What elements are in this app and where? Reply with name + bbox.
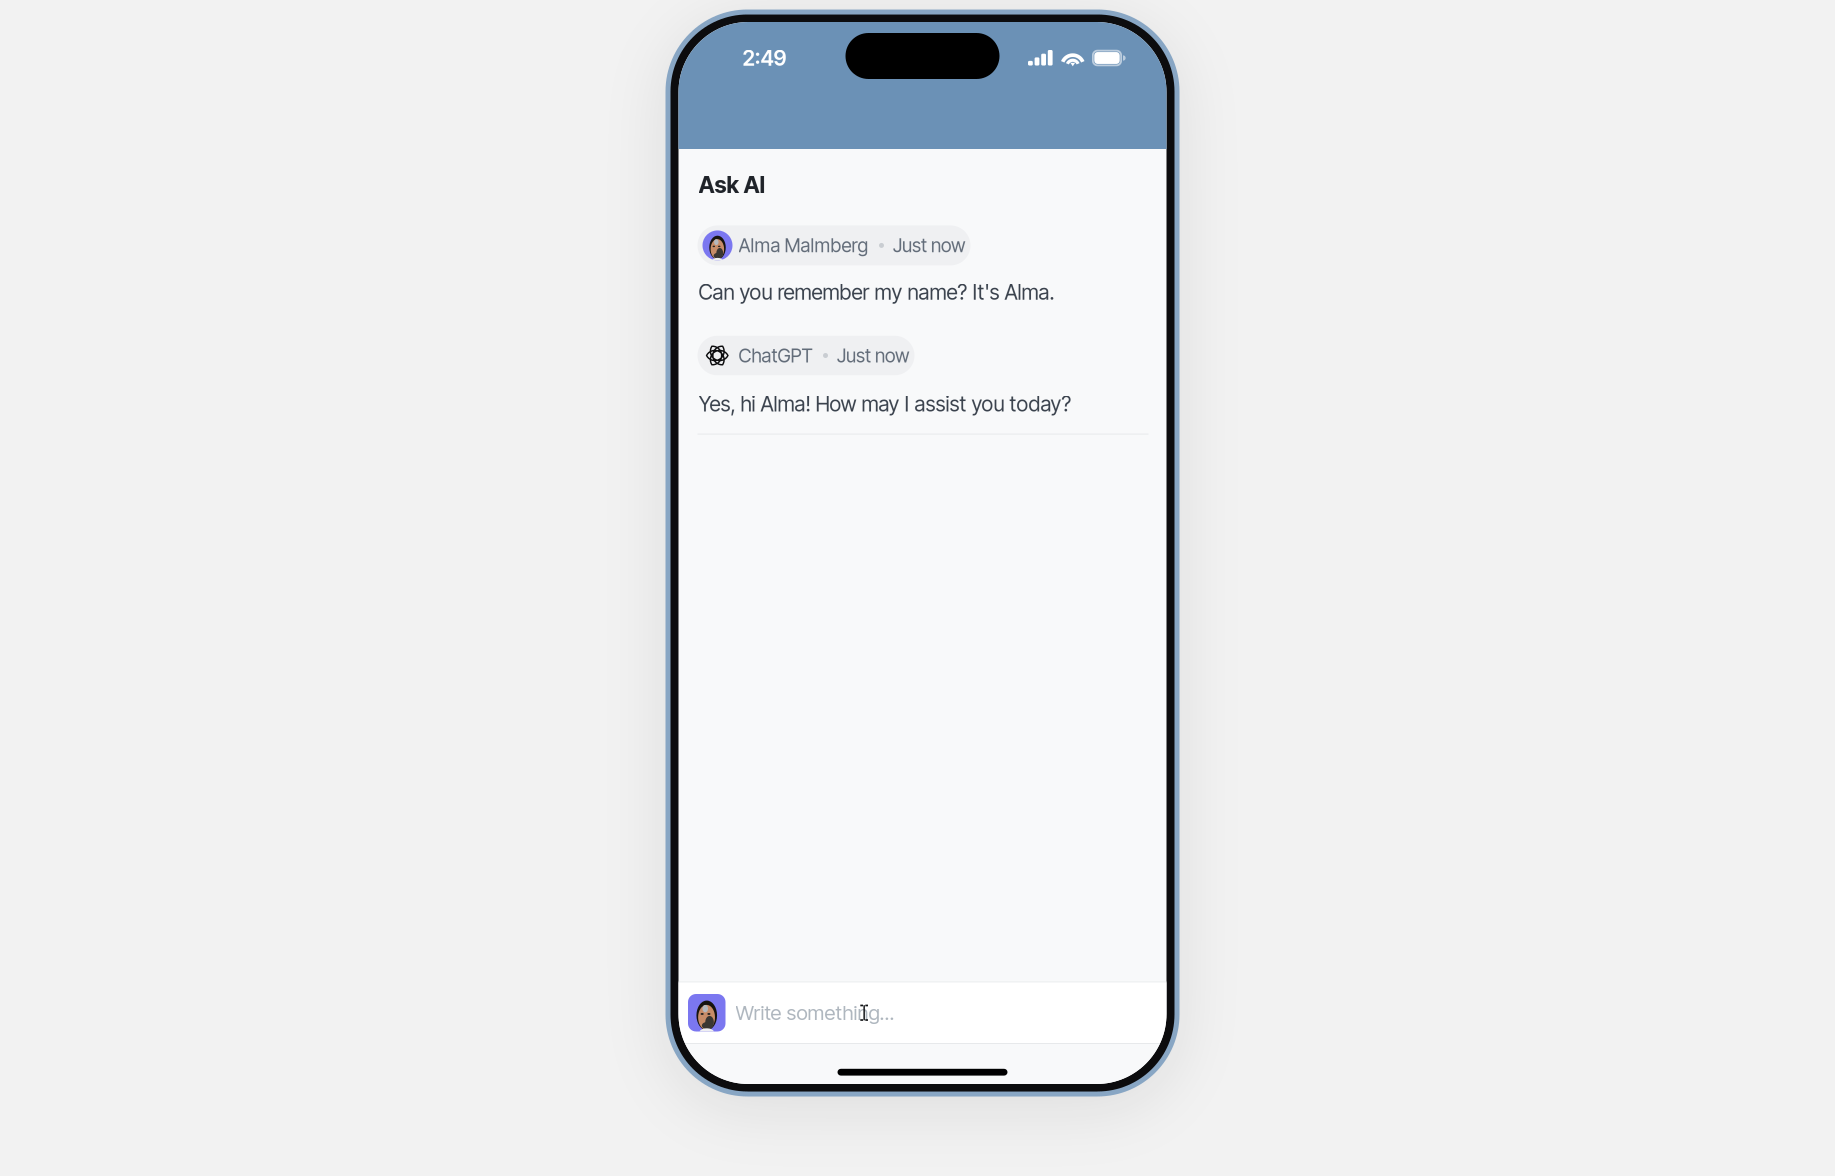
staticText: Ask AI <box>698 171 765 198</box>
staticText: Just now <box>893 234 965 257</box>
button[interactable]: Write something... <box>678 982 1166 1043</box>
staticText: Write something... <box>735 1000 894 1025</box>
button[interactable]: Alma Malmberg <box>697 225 970 265</box>
staticText: Just now <box>837 344 909 367</box>
staticText: Alma Malmberg <box>738 234 868 257</box>
staticText: Yes, hi Alma! How may I assist you today… <box>698 391 1071 417</box>
button[interactable]: ChatGPT <box>697 336 914 375</box>
staticText: ChatGPT <box>738 344 812 367</box>
staticText: 2:49 <box>742 45 786 71</box>
staticText: Can you remember my name? It's Alma. <box>698 279 1054 305</box>
